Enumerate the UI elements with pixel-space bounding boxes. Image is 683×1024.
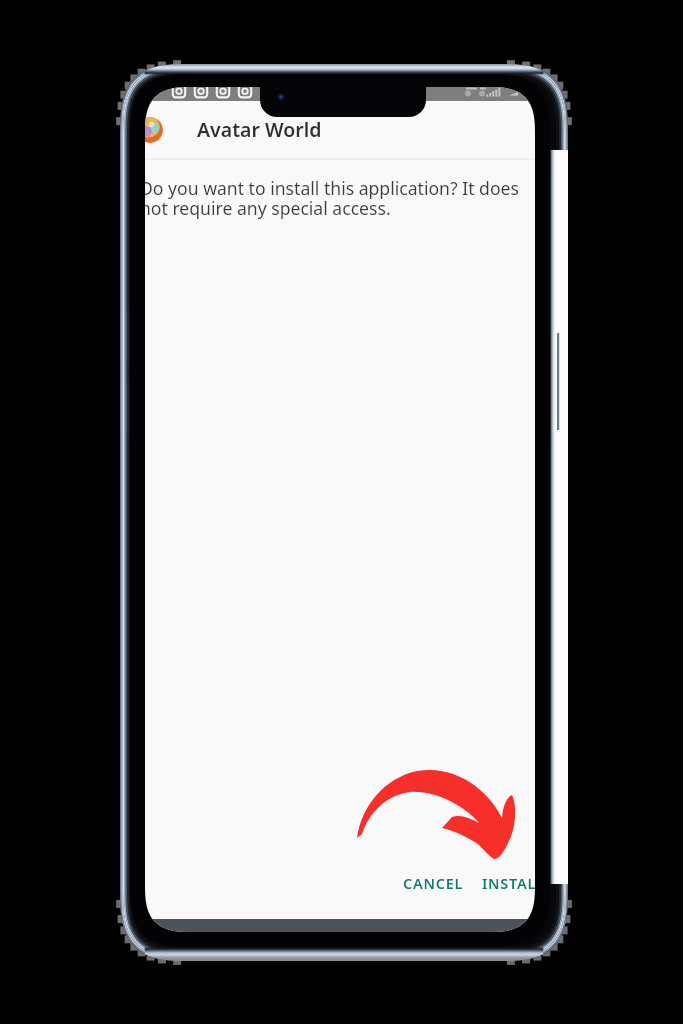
button[interactable]: CANCEL — [392, 864, 475, 902]
staticText: Do you want to install this application?… — [145, 176, 530, 221]
button[interactable]: INSTALL — [471, 864, 535, 902]
staticText: Avatar World — [197, 116, 322, 143]
staticText: CANCEL — [403, 873, 464, 893]
other: Arrow pointing at the Install button — [356, 769, 516, 861]
staticText: INSTALL — [482, 873, 535, 893]
